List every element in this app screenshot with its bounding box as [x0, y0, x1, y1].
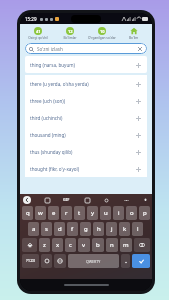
staticText: p — [143, 209, 147, 217]
button[interactable]: 41 — [22, 24, 54, 41]
staticText: 15:29 — [25, 16, 37, 22]
button[interactable]: v — [78, 238, 90, 252]
staticText: k — [123, 225, 127, 233]
button[interactable]: z — [39, 238, 50, 252]
button[interactable]: Clipboard — [83, 196, 91, 204]
button[interactable]: g — [80, 222, 91, 236]
staticText: w — [38, 209, 43, 217]
staticText: 10 — [100, 29, 105, 34]
button[interactable]: f — [67, 222, 78, 236]
button[interactable]: b — [92, 238, 104, 252]
staticText: thing (narsa, buyum) — [30, 62, 75, 68]
button[interactable]: u — [100, 206, 111, 220]
button[interactable]: Tasdiqlash — [132, 254, 150, 268]
staticText: thus (shunday qilib) — [30, 149, 73, 155]
button[interactable]: a — [28, 222, 39, 236]
button[interactable]: Yana — [122, 196, 130, 204]
button[interactable]: x — [52, 238, 63, 252]
button[interactable]: there (u yerda, o'sha yerda) — [25, 75, 147, 92]
button[interactable]: m — [120, 238, 132, 252]
staticText: f — [71, 225, 74, 233]
button[interactable]: 12 — [54, 24, 86, 41]
button[interactable]: third (uchinchi) — [25, 109, 147, 126]
button[interactable]: n — [106, 238, 118, 252]
staticText: o — [130, 209, 134, 217]
button[interactable]: o — [126, 206, 137, 220]
staticText: b — [96, 241, 100, 249]
button[interactable]: Emoji — [41, 254, 52, 268]
staticText: h — [97, 225, 101, 233]
staticText: QWERTY — [86, 259, 101, 264]
staticText: r — [65, 209, 68, 217]
button[interactable]: r — [61, 206, 72, 220]
button[interactable]: k — [119, 222, 130, 236]
other: Qo'shish — [134, 61, 142, 69]
staticText: e — [52, 209, 56, 217]
button[interactable]: Menyu — [23, 196, 31, 204]
button[interactable]: i — [113, 206, 124, 220]
staticText: 41 — [36, 29, 41, 34]
staticText: x — [56, 241, 60, 249]
staticText: ?123 — [26, 258, 36, 264]
button[interactable]: O'chirish — [134, 238, 150, 252]
staticText: s — [45, 225, 48, 233]
staticText: j — [111, 225, 113, 233]
button[interactable]: Bo'sh joy — [68, 254, 119, 268]
staticText: v — [82, 241, 86, 249]
staticText: g — [84, 225, 88, 233]
button[interactable]: Til — [54, 254, 66, 268]
staticText: m — [123, 241, 129, 249]
staticText: l — [137, 225, 139, 233]
button[interactable]: So'zni izlash — [25, 43, 147, 54]
button[interactable]: thus (shunday qilib) — [25, 143, 147, 160]
button[interactable]: Sozlamalar — [102, 196, 110, 204]
button[interactable]: p — [139, 206, 150, 220]
staticText: Bo'lim — [129, 36, 139, 40]
button[interactable]: Shift — [22, 238, 37, 252]
staticText: t — [78, 209, 81, 217]
staticText: thought (fikr, o'y-xayol) — [30, 166, 80, 172]
staticText: y — [91, 209, 95, 217]
button[interactable]: c — [65, 238, 76, 252]
staticText: third (uchinchi) — [30, 115, 63, 121]
other: Qo'shish — [134, 165, 142, 173]
staticText: Oxirgi qo'shil — [28, 36, 48, 40]
staticText: q — [26, 209, 30, 217]
other: Qo'shish — [134, 131, 142, 139]
other: Qo'shish — [134, 148, 142, 156]
staticText: a — [32, 225, 36, 233]
button[interactable]: Tozalash — [137, 46, 143, 52]
other: Qo'shish — [134, 114, 142, 122]
button[interactable]: thousand (ming) — [25, 126, 147, 143]
button[interactable]: d — [54, 222, 65, 236]
button[interactable]: t — [74, 206, 85, 220]
button[interactable]: Nuqta — [121, 254, 130, 268]
button[interactable]: Mikrofon — [141, 196, 149, 204]
staticText: 12 — [68, 29, 73, 34]
staticText: d — [58, 225, 62, 233]
other: Qo'shish — [134, 97, 142, 105]
button[interactable]: q — [22, 206, 33, 220]
button[interactable]: thought (fikr, o'y-xayol) — [25, 160, 147, 177]
staticText: So'zni izlash — [37, 46, 63, 52]
button[interactable]: y — [87, 206, 98, 220]
button[interactable]: e — [48, 206, 59, 220]
button[interactable]: 10 — [86, 24, 118, 41]
staticText: GIF — [63, 197, 70, 202]
button[interactable]: Bosh sahifa — [118, 24, 150, 41]
button[interactable]: GIF — [62, 196, 71, 203]
button[interactable]: s — [41, 222, 52, 236]
button[interactable]: ?123 — [22, 254, 39, 268]
button[interactable]: j — [106, 222, 117, 236]
button[interactable]: h — [93, 222, 104, 236]
button[interactable]: thing (narsa, buyum) — [25, 56, 147, 73]
staticText: z — [43, 241, 46, 249]
staticText: c — [69, 241, 72, 249]
staticText: i — [118, 209, 120, 217]
button[interactable]: l — [132, 222, 143, 236]
staticText: O'rganilgan so'zlar — [88, 36, 116, 40]
button[interactable]: w — [35, 206, 46, 220]
button[interactable]: three (uch (son)) — [25, 92, 147, 109]
button[interactable]: Stiker — [43, 196, 51, 204]
staticText: u — [104, 209, 108, 217]
